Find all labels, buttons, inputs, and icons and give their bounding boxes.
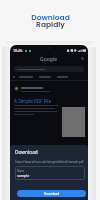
button[interactable]: Search bbox=[14, 66, 84, 72]
staticText: Name bbox=[17, 169, 25, 173]
staticText: https://www.africau.edu/images/default/s… bbox=[15, 160, 84, 164]
staticText: sample bbox=[17, 173, 30, 178]
staticText: 10:46 bbox=[13, 48, 23, 53]
staticText: Download bbox=[15, 149, 38, 156]
staticText: Rapidly bbox=[36, 19, 65, 29]
staticText: Google bbox=[40, 56, 58, 63]
staticText: A Simple PDF File bbox=[14, 98, 51, 104]
staticText: Download bbox=[44, 192, 60, 196]
button[interactable]: Download bbox=[17, 190, 86, 197]
staticText: Download bbox=[31, 12, 70, 22]
button[interactable]: Name bbox=[15, 166, 85, 180]
button[interactable]: Account bbox=[81, 57, 84, 60]
